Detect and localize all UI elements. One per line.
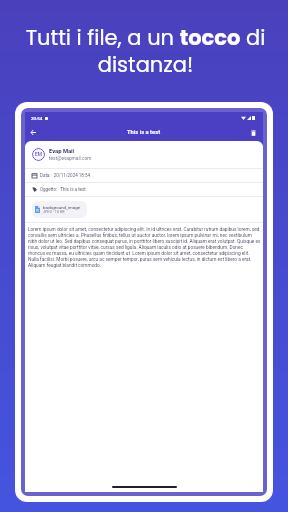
staticText: Evap Mail [49,148,75,155]
button[interactable]: background_image [32,201,87,218]
button[interactable]: Delete [247,126,260,139]
staticText: This is a test [127,129,161,136]
staticText: Lorem ipsum dolor sit amet, consectetur … [28,227,261,269]
staticText: EM [35,152,42,158]
button[interactable]: Back [27,126,40,139]
staticText: Tutti i file, a un tocco di distanza! [14,23,277,80]
staticText: 20:54 [31,116,43,121]
staticText: Data: 20/11/2024 18:54 [40,173,91,178]
staticText: test@evapmail.com [49,156,92,162]
staticText: JPEG - 10 KB [43,210,65,214]
staticText: Oggetto: This is a test [40,187,86,192]
staticText: background_image [43,205,81,210]
